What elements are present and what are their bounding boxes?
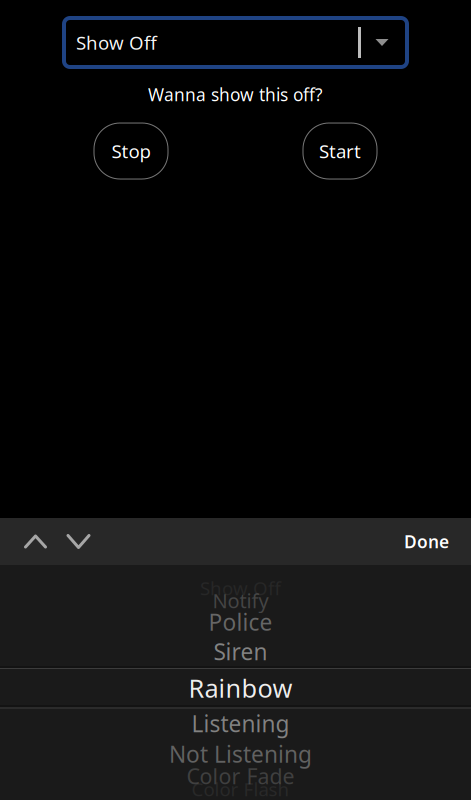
staticText: Color Flash	[191, 777, 289, 800]
staticText: Wanna show this off?	[148, 83, 323, 106]
staticText: Show Off	[200, 576, 281, 600]
staticText: Police	[208, 607, 272, 637]
staticText: Show Off	[76, 30, 157, 55]
button[interactable]: Show Off	[62, 16, 409, 69]
staticText: Stop	[111, 139, 150, 163]
button[interactable]: Next	[57, 518, 100, 565]
staticText: Start	[319, 139, 361, 163]
button[interactable]: Previous	[14, 518, 57, 565]
staticText: Rainbow	[188, 671, 292, 705]
staticText: Color Fade	[186, 762, 294, 790]
staticText: Not Listening	[169, 739, 312, 769]
button[interactable]: Done	[393, 518, 460, 565]
staticText: Done	[404, 530, 449, 553]
staticText: Notify	[212, 587, 268, 614]
button[interactable]: Start	[303, 123, 377, 179]
staticText: Listening	[191, 708, 289, 738]
staticText: Siren	[213, 636, 267, 666]
button[interactable]: Stop	[94, 123, 168, 179]
